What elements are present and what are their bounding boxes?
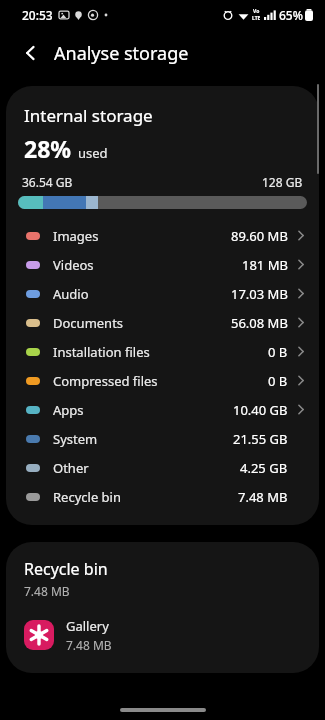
button[interactable]: Images [6, 221, 319, 250]
button[interactable]: Apps [6, 395, 319, 424]
staticText: Images [53, 227, 99, 245]
staticText: 4.25 GB [240, 459, 288, 477]
staticText: System [53, 430, 98, 448]
staticText: 7.48 MB [24, 583, 70, 599]
staticText: Videos [53, 256, 94, 274]
staticText: 28% [24, 133, 72, 164]
staticText: Recycle bin [53, 488, 121, 506]
staticText: 128 GB [262, 174, 303, 190]
staticText: 20:53 [22, 7, 53, 23]
staticText: 10.40 GB [233, 401, 288, 419]
staticText: 0 B [268, 372, 288, 390]
staticText: Gallery [66, 617, 109, 635]
staticText: 89.60 MB [231, 227, 288, 245]
button[interactable]: Recycle bin [6, 542, 319, 673]
staticText: 56.08 MB [231, 314, 288, 332]
button[interactable]: Gallery [6, 615, 319, 655]
staticText: 21.55 GB [233, 430, 288, 448]
button[interactable]: Recycle bin [6, 482, 319, 511]
staticText: LTE [252, 15, 261, 22]
button[interactable]: Videos [6, 250, 319, 279]
button[interactable]: Installation files [6, 337, 319, 366]
staticText: Installation files [53, 343, 150, 361]
staticText: Other [53, 459, 89, 477]
staticText: 0 B [268, 343, 288, 361]
button[interactable]: Audio [6, 279, 319, 308]
staticText: 7.48 MB [66, 637, 112, 653]
staticText: Apps [53, 401, 84, 419]
button[interactable]: System [6, 424, 319, 453]
staticText: Internal storage [24, 104, 153, 127]
staticText: Analyse storage [54, 41, 189, 66]
button[interactable]: Documents [6, 308, 319, 337]
staticText: Compressed files [53, 372, 158, 390]
button[interactable]: Compressed files [6, 366, 319, 395]
staticText: 181 MB [242, 256, 288, 274]
staticText: Documents [53, 314, 124, 332]
staticText: Audio [53, 285, 89, 303]
staticText: 7.48 MB [238, 488, 288, 506]
staticText: used [78, 144, 108, 162]
staticText: Recycle bin [24, 558, 108, 580]
staticText: 17.03 MB [231, 285, 288, 303]
button[interactable]: Back [14, 36, 48, 70]
button[interactable]: Other [6, 453, 319, 482]
staticText: 65% [279, 7, 303, 23]
staticText: 36.54 GB [22, 174, 73, 190]
staticText: Vo [253, 8, 260, 15]
